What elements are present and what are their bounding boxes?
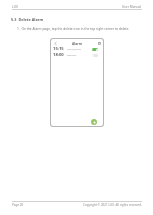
staticText: LUX [12,5,18,9]
staticText: 5.3 Delete Alarm [11,17,44,22]
staticText: Page 20 [12,203,24,207]
staticText: User Manual [122,5,142,9]
staticText: Everyday [67,54,77,57]
button[interactable]: Toggle alarm [92,48,98,51]
staticText: Mon,Tue,Wed [67,48,81,51]
button[interactable]: Delete [97,41,101,45]
button[interactable]: Toggle alarm [92,54,98,57]
staticText: 18:00 [53,52,64,58]
staticText: Alarm [72,41,82,45]
staticText: 1. On the Alarm page, tap the delete ico… [17,27,130,31]
staticText: Copyright © 2021 LUX. All rights reserve… [83,203,142,207]
staticText: 15:15 [53,46,64,52]
button[interactable]: 15:15 [53,46,98,52]
button[interactable]: Back [53,41,57,45]
button[interactable]: 18:00 [53,52,98,58]
button[interactable]: Add alarm [91,119,97,125]
